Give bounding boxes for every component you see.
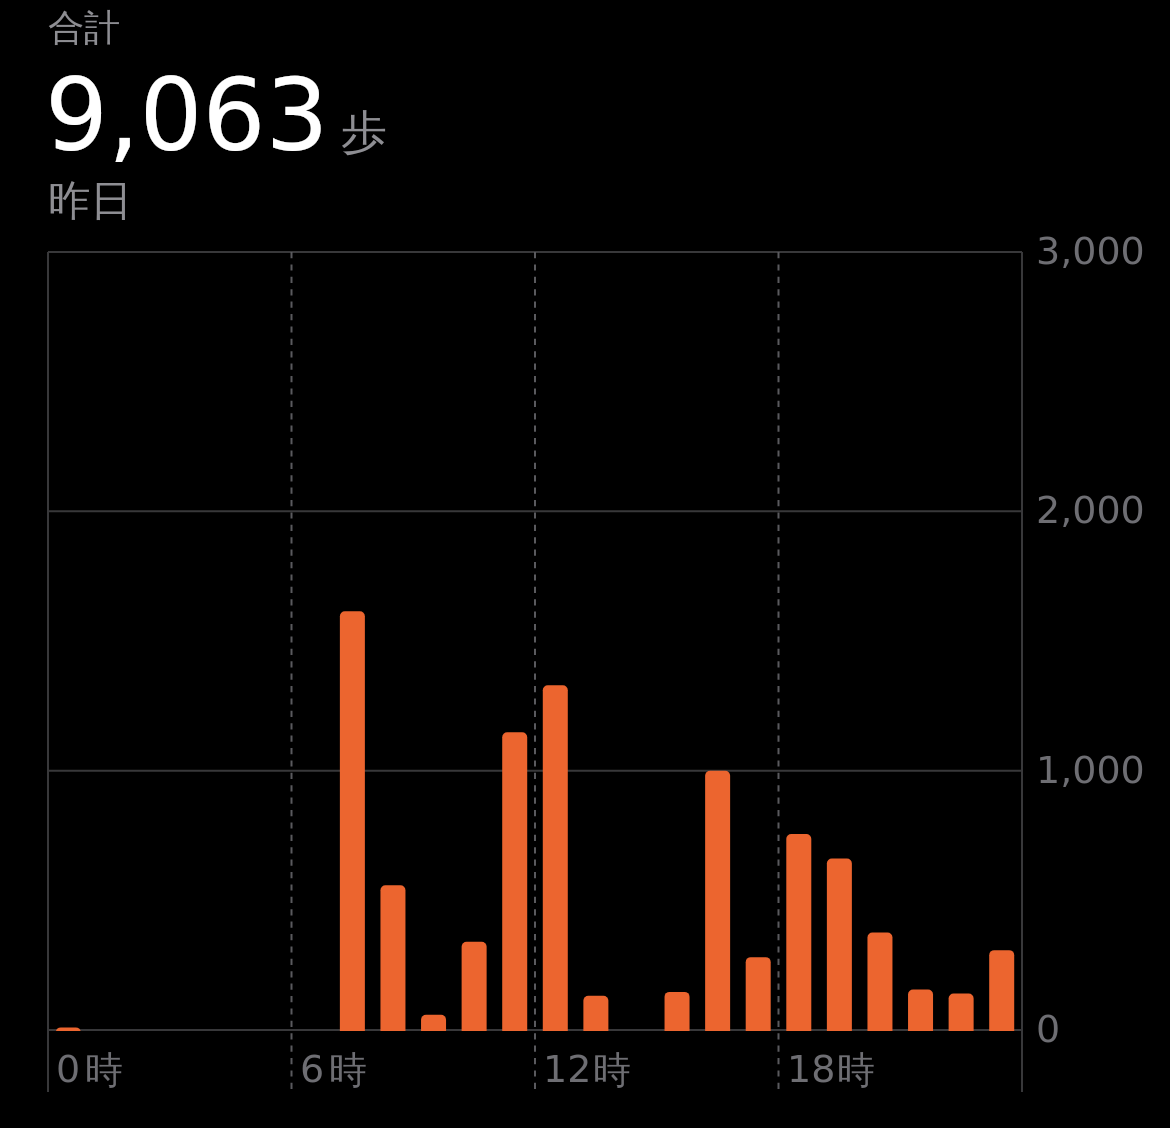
staticText: 6 <box>300 1047 325 1091</box>
staticText: 9,063 <box>45 58 329 173</box>
staticText: 合計 <box>48 5 120 50</box>
staticText: 歩 <box>341 104 387 162</box>
staticText: 時 <box>837 1046 875 1094</box>
staticText: 1,000 <box>1036 748 1145 792</box>
staticText: 時 <box>85 1046 123 1094</box>
staticText: 0 <box>1036 1007 1061 1051</box>
staticText: 3,000 <box>1036 229 1145 273</box>
staticText: 12 <box>543 1047 592 1091</box>
staticText: 時 <box>329 1046 367 1094</box>
staticText: 0 <box>56 1047 81 1091</box>
button[interactable]: 合計 <box>0 0 700 228</box>
button[interactable]: Hourly step chart <box>0 230 1170 1110</box>
staticText: 昨日 <box>48 175 132 228</box>
staticText: 時 <box>593 1046 631 1094</box>
staticText: 2,000 <box>1036 488 1145 532</box>
staticText: 18 <box>787 1047 836 1091</box>
